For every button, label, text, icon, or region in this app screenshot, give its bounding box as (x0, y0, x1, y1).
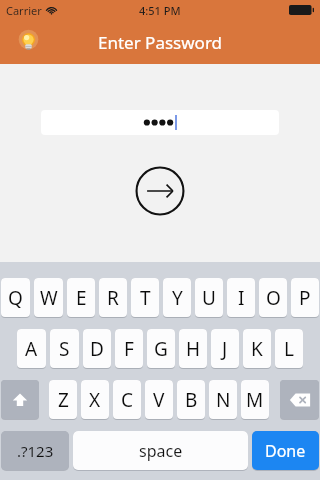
staticText: V (153, 387, 165, 413)
button[interactable]: Z (49, 380, 77, 419)
button[interactable]: U (195, 278, 223, 317)
button[interactable]: Shift (1, 380, 39, 419)
button[interactable]: N (209, 380, 237, 419)
staticText: G (154, 336, 168, 362)
button[interactable]: Password field (41, 110, 279, 135)
button[interactable]: Hint (12, 26, 44, 58)
button[interactable]: S (50, 329, 79, 368)
staticText: U (202, 285, 216, 311)
staticText: L (284, 336, 294, 362)
staticText: 4:51 PM (139, 3, 181, 18)
staticText: F (124, 336, 134, 362)
button[interactable]: .?123 (1, 431, 69, 470)
staticText: O (266, 285, 281, 311)
staticText: R (107, 285, 119, 311)
staticText: M (246, 387, 264, 413)
button[interactable]: T (131, 278, 159, 317)
button[interactable]: B (177, 380, 205, 419)
button[interactable]: H (179, 329, 207, 368)
button[interactable]: E (67, 278, 95, 317)
staticText: H (186, 336, 201, 362)
button[interactable]: Y (163, 278, 191, 317)
button[interactable]: Backspace (280, 380, 319, 419)
button[interactable]: M (241, 380, 269, 419)
staticText: space (139, 440, 183, 462)
button[interactable]: C (113, 380, 141, 419)
staticText: P (299, 285, 311, 311)
staticText: Done (265, 440, 306, 462)
staticText: Enter Password (98, 31, 223, 54)
button[interactable]: P (291, 278, 319, 317)
button[interactable]: G (147, 329, 175, 368)
button[interactable]: Q (1, 278, 30, 317)
staticText: E (76, 285, 87, 311)
button[interactable]: K (243, 329, 271, 368)
button[interactable]: D (83, 329, 111, 368)
staticText: A (25, 336, 38, 362)
button[interactable]: A (17, 329, 46, 368)
button[interactable]: X (81, 380, 109, 419)
button[interactable]: Submit password (134, 165, 186, 217)
staticText: Y (172, 285, 183, 311)
button[interactable]: W (34, 278, 63, 317)
button[interactable]: Done (252, 431, 319, 470)
button[interactable]: R (99, 278, 127, 317)
staticText: I (238, 285, 245, 311)
button[interactable]: space (73, 431, 248, 470)
staticText: X (89, 387, 101, 413)
staticText: W (40, 285, 58, 311)
button[interactable]: O (259, 278, 287, 317)
staticText: Carrier (6, 3, 42, 18)
button[interactable]: V (145, 380, 173, 419)
button[interactable]: L (275, 329, 303, 368)
staticText: S (59, 336, 70, 362)
button[interactable]: F (115, 329, 143, 368)
staticText: .?123 (17, 441, 54, 461)
staticText: D (90, 336, 104, 362)
button[interactable]: I (227, 278, 255, 317)
staticText: T (140, 285, 151, 311)
staticText: J (222, 336, 228, 362)
button[interactable]: J (211, 329, 239, 368)
staticText: B (185, 387, 198, 413)
staticText: K (251, 336, 263, 362)
staticText: Q (8, 285, 23, 311)
staticText: Z (58, 387, 69, 413)
staticText: N (216, 387, 231, 413)
staticText: C (121, 387, 134, 413)
